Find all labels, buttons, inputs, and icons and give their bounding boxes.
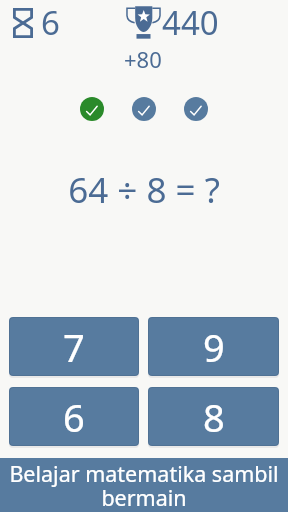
button[interactable]: Belajar matematika sambil bermain [0, 458, 288, 512]
staticText: 64 ÷ 8 = ? [68, 166, 220, 214]
staticText: 6 [41, 0, 60, 45]
button[interactable]: Answered correctly [80, 97, 104, 121]
button[interactable]: 7 [9, 317, 139, 376]
staticText: 440 [162, 0, 219, 45]
staticText: 6 [63, 391, 85, 443]
staticText: 9 [203, 321, 225, 373]
staticText: 7 [63, 321, 85, 373]
button[interactable]: Answered correctly [184, 97, 208, 121]
staticText: 8 [203, 391, 225, 443]
button[interactable]: 6 [9, 387, 139, 446]
staticText: +80 [124, 44, 162, 74]
button[interactable]: 8 [148, 387, 279, 446]
button[interactable]: 9 [148, 317, 279, 376]
button[interactable]: Time remaining [13, 8, 33, 38]
button[interactable]: Answered correctly [132, 97, 156, 121]
staticText: Belajar matematika sambil bermain [2, 459, 286, 512]
button[interactable]: Trophy score [126, 5, 161, 39]
